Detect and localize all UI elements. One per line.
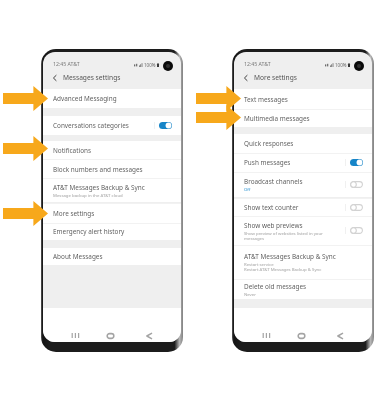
button[interactable]: Conversations categories (43, 116, 181, 135)
staticText: Multimedia messages (244, 114, 310, 123)
button[interactable]: Emergency alert history (43, 223, 181, 240)
staticText: Quick responses (244, 139, 294, 148)
staticText: 100% (335, 62, 347, 68)
staticText: Broadcast channels (244, 177, 303, 186)
button[interactable]: Notifications (43, 141, 181, 159)
staticText: Off (244, 186, 251, 192)
button[interactable]: AT&T Messages Backup & Sync (234, 245, 372, 279)
staticText: 12:45 AT&T (244, 60, 271, 67)
button[interactable]: Block numbers and messages (43, 159, 181, 179)
staticText: More settings (254, 73, 297, 82)
staticText: Notifications (53, 146, 92, 155)
staticText: AT&T Messages Backup & Sync (244, 252, 336, 261)
button[interactable]: Text messages (234, 89, 372, 109)
staticText: Conversations categories (53, 121, 129, 130)
staticText: Delete old messages (244, 282, 307, 291)
staticText: Message backup in the AT&T cloud (53, 192, 123, 198)
staticText: Restart service Restart AT&T Messages Ba… (244, 261, 322, 272)
staticText: 100% (144, 62, 156, 68)
staticText: Text messages (244, 95, 288, 104)
staticText: AT&T Messages Backup & Sync (53, 183, 145, 192)
button[interactable]: Back (333, 329, 346, 342)
button[interactable]: Multimedia messages (234, 109, 372, 127)
staticText: Messages settings (63, 73, 121, 82)
staticText: Emergency alert history (53, 227, 125, 236)
staticText: 12:45 AT&T (53, 60, 80, 67)
button[interactable]: About Messages (43, 248, 181, 265)
button[interactable]: Delete old messages (234, 279, 372, 299)
staticText: Advanced Messaging (53, 94, 117, 103)
button[interactable]: Recent apps (69, 329, 82, 342)
button[interactable]: Push messages (234, 153, 372, 172)
button[interactable]: More settings (43, 203, 181, 223)
button[interactable]: Home (295, 329, 308, 342)
button[interactable]: Broadcast channels (234, 172, 372, 197)
button[interactable]: Back (142, 329, 155, 342)
staticText: Show text counter (244, 203, 299, 212)
button[interactable]: Quick responses (234, 134, 372, 153)
staticText: Block numbers and messages (53, 165, 143, 174)
staticText: Show preview of websites listed in your … (244, 230, 342, 241)
button[interactable]: AT&T Messages Backup & Sync (43, 178, 181, 202)
staticText: Push messages (244, 158, 291, 167)
button[interactable]: Navigate up (49, 72, 60, 83)
staticText: More settings (53, 209, 95, 218)
button[interactable]: Advanced Messaging (43, 89, 181, 108)
staticText: Never (244, 291, 256, 297)
button[interactable]: Home (104, 329, 117, 342)
button[interactable]: Navigate up (240, 72, 251, 83)
staticText: Show web previews (244, 221, 303, 230)
button[interactable]: Show text counter (234, 198, 372, 216)
button[interactable]: Show web previews (234, 216, 372, 245)
staticText: About Messages (53, 252, 103, 261)
button[interactable]: Recent apps (260, 329, 273, 342)
